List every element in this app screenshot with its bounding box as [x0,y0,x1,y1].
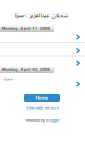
staticText: Blogger [46,118,59,123]
button[interactable]: حمزة [3,75,13,81]
button[interactable] [75,34,80,40]
button[interactable] [75,81,80,87]
staticText: Powered by [26,118,45,123]
staticText: شحلان عبدالعزيز :حمزة [14,11,68,19]
staticText: View web version [25,105,59,111]
button[interactable] [75,60,80,66]
staticText: Monday, April 17, 2006 [2,26,49,31]
staticText: Home [35,95,48,101]
staticText: Monday, April 03, 2006 [2,67,49,72]
button[interactable] [75,47,80,54]
staticText: حمزة [3,75,13,81]
button[interactable]: View web version [25,105,59,111]
button[interactable]: Home [24,94,60,102]
button[interactable]: Blogger [46,118,59,123]
